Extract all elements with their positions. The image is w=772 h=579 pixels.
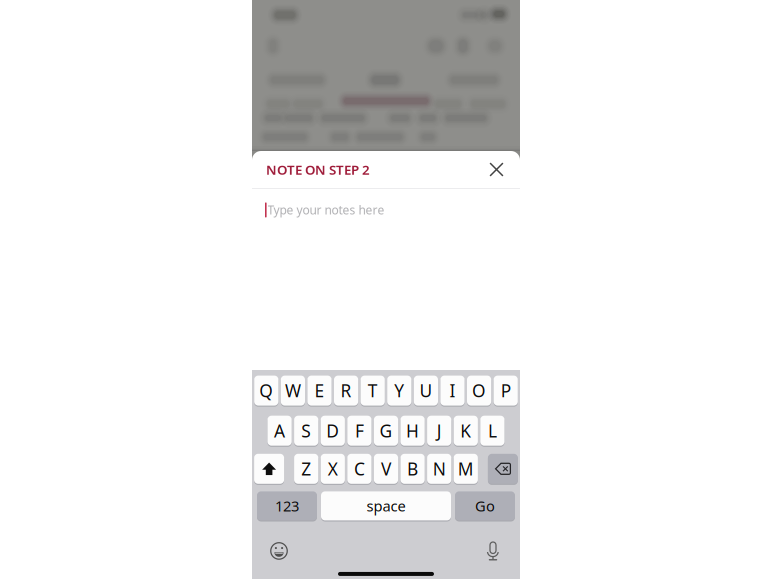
staticText: U [419,379,432,402]
staticText: P [501,379,511,402]
staticText: B [407,457,418,480]
button[interactable]: K [454,415,478,446]
button[interactable]: T [361,375,385,406]
button[interactable]: Q [254,375,278,406]
staticText: J [437,419,442,442]
staticText: I [449,379,455,402]
staticText: Y [394,379,404,402]
staticText: A [274,419,285,442]
button[interactable]: M [454,453,478,484]
staticText: Z [301,457,311,480]
button[interactable]: F [347,415,371,446]
staticText: N [433,457,446,480]
button[interactable]: 123 [257,491,317,521]
staticText: S [301,419,311,442]
staticText: H [406,419,419,442]
button[interactable]: L [480,415,504,446]
staticText: M [458,457,474,480]
button[interactable]: Close note [481,154,511,184]
button[interactable]: R [334,375,358,406]
button[interactable]: Delete [488,453,518,484]
button[interactable]: V [374,453,398,484]
button[interactable]: Y [387,375,411,406]
button[interactable]: N [427,453,451,484]
staticText: W [285,379,301,402]
button[interactable]: E [307,375,332,406]
button[interactable]: O [467,375,491,406]
staticText: space [366,496,405,516]
staticText: Type your notes here [268,202,385,218]
button[interactable]: H [400,415,425,446]
button[interactable]: J [427,415,451,446]
staticText: E [314,379,324,402]
button[interactable]: A [267,415,292,446]
staticText: F [355,419,364,442]
button[interactable]: G [374,415,398,446]
staticText: V [381,457,391,480]
staticText: O [472,379,486,402]
button[interactable]: X [321,453,345,484]
staticText: T [368,379,378,402]
button[interactable]: D [321,415,345,446]
button[interactable]: Emoji [263,538,295,564]
button[interactable]: Dictate [477,538,509,564]
button[interactable]: B [400,453,425,484]
button[interactable]: C [347,453,371,484]
staticText: L [488,419,497,442]
button[interactable]: Go [455,491,515,521]
button[interactable]: P [494,375,518,406]
staticText: NOTE ON STEP 2 [266,161,370,178]
staticText: K [460,419,471,442]
staticText: C [354,457,365,480]
staticText: G [379,419,392,442]
staticText: R [341,379,352,402]
button[interactable]: space [321,491,451,521]
staticText: X [328,457,338,480]
button[interactable]: Shift [254,453,284,484]
button[interactable]: Z [294,453,318,484]
button[interactable]: I [440,375,465,406]
staticText: Q [259,379,273,402]
button[interactable]: S [294,415,318,446]
button[interactable]: W [281,375,305,406]
staticText: D [326,419,339,442]
button[interactable]: U [414,375,438,406]
staticText: 123 [275,496,299,516]
staticText: Go [475,496,495,516]
